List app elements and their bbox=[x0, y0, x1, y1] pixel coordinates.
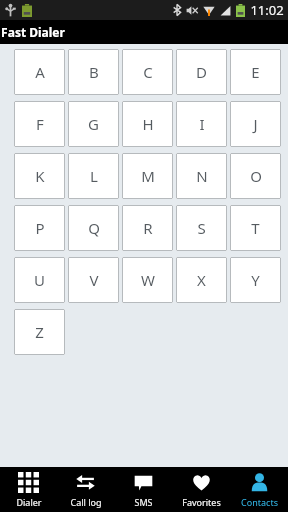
staticText: T bbox=[251, 218, 260, 238]
button[interactable]: D bbox=[176, 49, 227, 95]
button[interactable]: J bbox=[230, 101, 281, 147]
button[interactable]: A bbox=[14, 49, 65, 95]
staticText: L bbox=[90, 166, 98, 186]
button[interactable]: N bbox=[176, 153, 227, 199]
staticText: Y bbox=[251, 270, 260, 290]
button[interactable]: E bbox=[230, 49, 281, 95]
staticText: Dialer bbox=[16, 496, 42, 508]
button[interactable]: U bbox=[14, 257, 65, 303]
button[interactable]: Favorites bbox=[172, 467, 230, 512]
staticText: M bbox=[141, 166, 155, 186]
staticText: Contacts bbox=[241, 496, 278, 508]
staticText: W bbox=[141, 270, 155, 290]
staticText: U bbox=[34, 270, 45, 290]
staticText: K bbox=[35, 166, 45, 186]
staticText: E bbox=[251, 62, 260, 82]
button[interactable]: SMS bbox=[114, 467, 172, 512]
button[interactable]: Z bbox=[14, 309, 65, 355]
button[interactable]: O bbox=[230, 153, 281, 199]
button[interactable]: M bbox=[122, 153, 173, 199]
button[interactable]: Y bbox=[230, 257, 281, 303]
button[interactable]: Q bbox=[68, 205, 119, 251]
staticText: G bbox=[88, 114, 99, 134]
button[interactable]: R bbox=[122, 205, 173, 251]
staticText: Favorites bbox=[182, 496, 221, 508]
staticText: N bbox=[196, 166, 208, 186]
staticText: H bbox=[142, 114, 154, 134]
staticText: V bbox=[89, 270, 99, 290]
staticText: O bbox=[250, 166, 262, 186]
staticText: R bbox=[143, 218, 153, 238]
staticText: X bbox=[197, 270, 206, 290]
button[interactable]: B bbox=[68, 49, 119, 95]
staticText: P bbox=[35, 218, 45, 238]
button[interactable]: Dialer bbox=[0, 467, 57, 512]
button[interactable]: T bbox=[230, 205, 281, 251]
button[interactable]: G bbox=[68, 101, 119, 147]
staticText: J bbox=[253, 114, 258, 134]
button[interactable]: Contacts bbox=[230, 467, 288, 512]
staticText: S bbox=[197, 218, 206, 238]
button[interactable]: P bbox=[14, 205, 65, 251]
staticText: Q bbox=[88, 218, 100, 238]
staticText: Z bbox=[35, 322, 44, 342]
button[interactable]: S bbox=[176, 205, 227, 251]
staticText: D bbox=[196, 62, 207, 82]
button[interactable]: X bbox=[176, 257, 227, 303]
staticText: I bbox=[199, 114, 205, 134]
staticText: C bbox=[143, 62, 153, 82]
button[interactable]: V bbox=[68, 257, 119, 303]
button[interactable]: L bbox=[68, 153, 119, 199]
staticText: SMS bbox=[134, 496, 153, 508]
button[interactable]: C bbox=[122, 49, 173, 95]
button[interactable]: K bbox=[14, 153, 65, 199]
button[interactable]: F bbox=[14, 101, 65, 147]
button[interactable]: H bbox=[122, 101, 173, 147]
staticText: A bbox=[35, 62, 45, 82]
staticText: Fast Dialer bbox=[1, 24, 65, 40]
staticText: Call log bbox=[70, 496, 102, 508]
button[interactable]: W bbox=[122, 257, 173, 303]
button[interactable]: I bbox=[176, 101, 227, 147]
staticText: 11:02 bbox=[250, 1, 284, 19]
staticText: F bbox=[36, 114, 44, 134]
staticText: B bbox=[89, 62, 99, 82]
button[interactable]: Call log bbox=[57, 467, 114, 512]
